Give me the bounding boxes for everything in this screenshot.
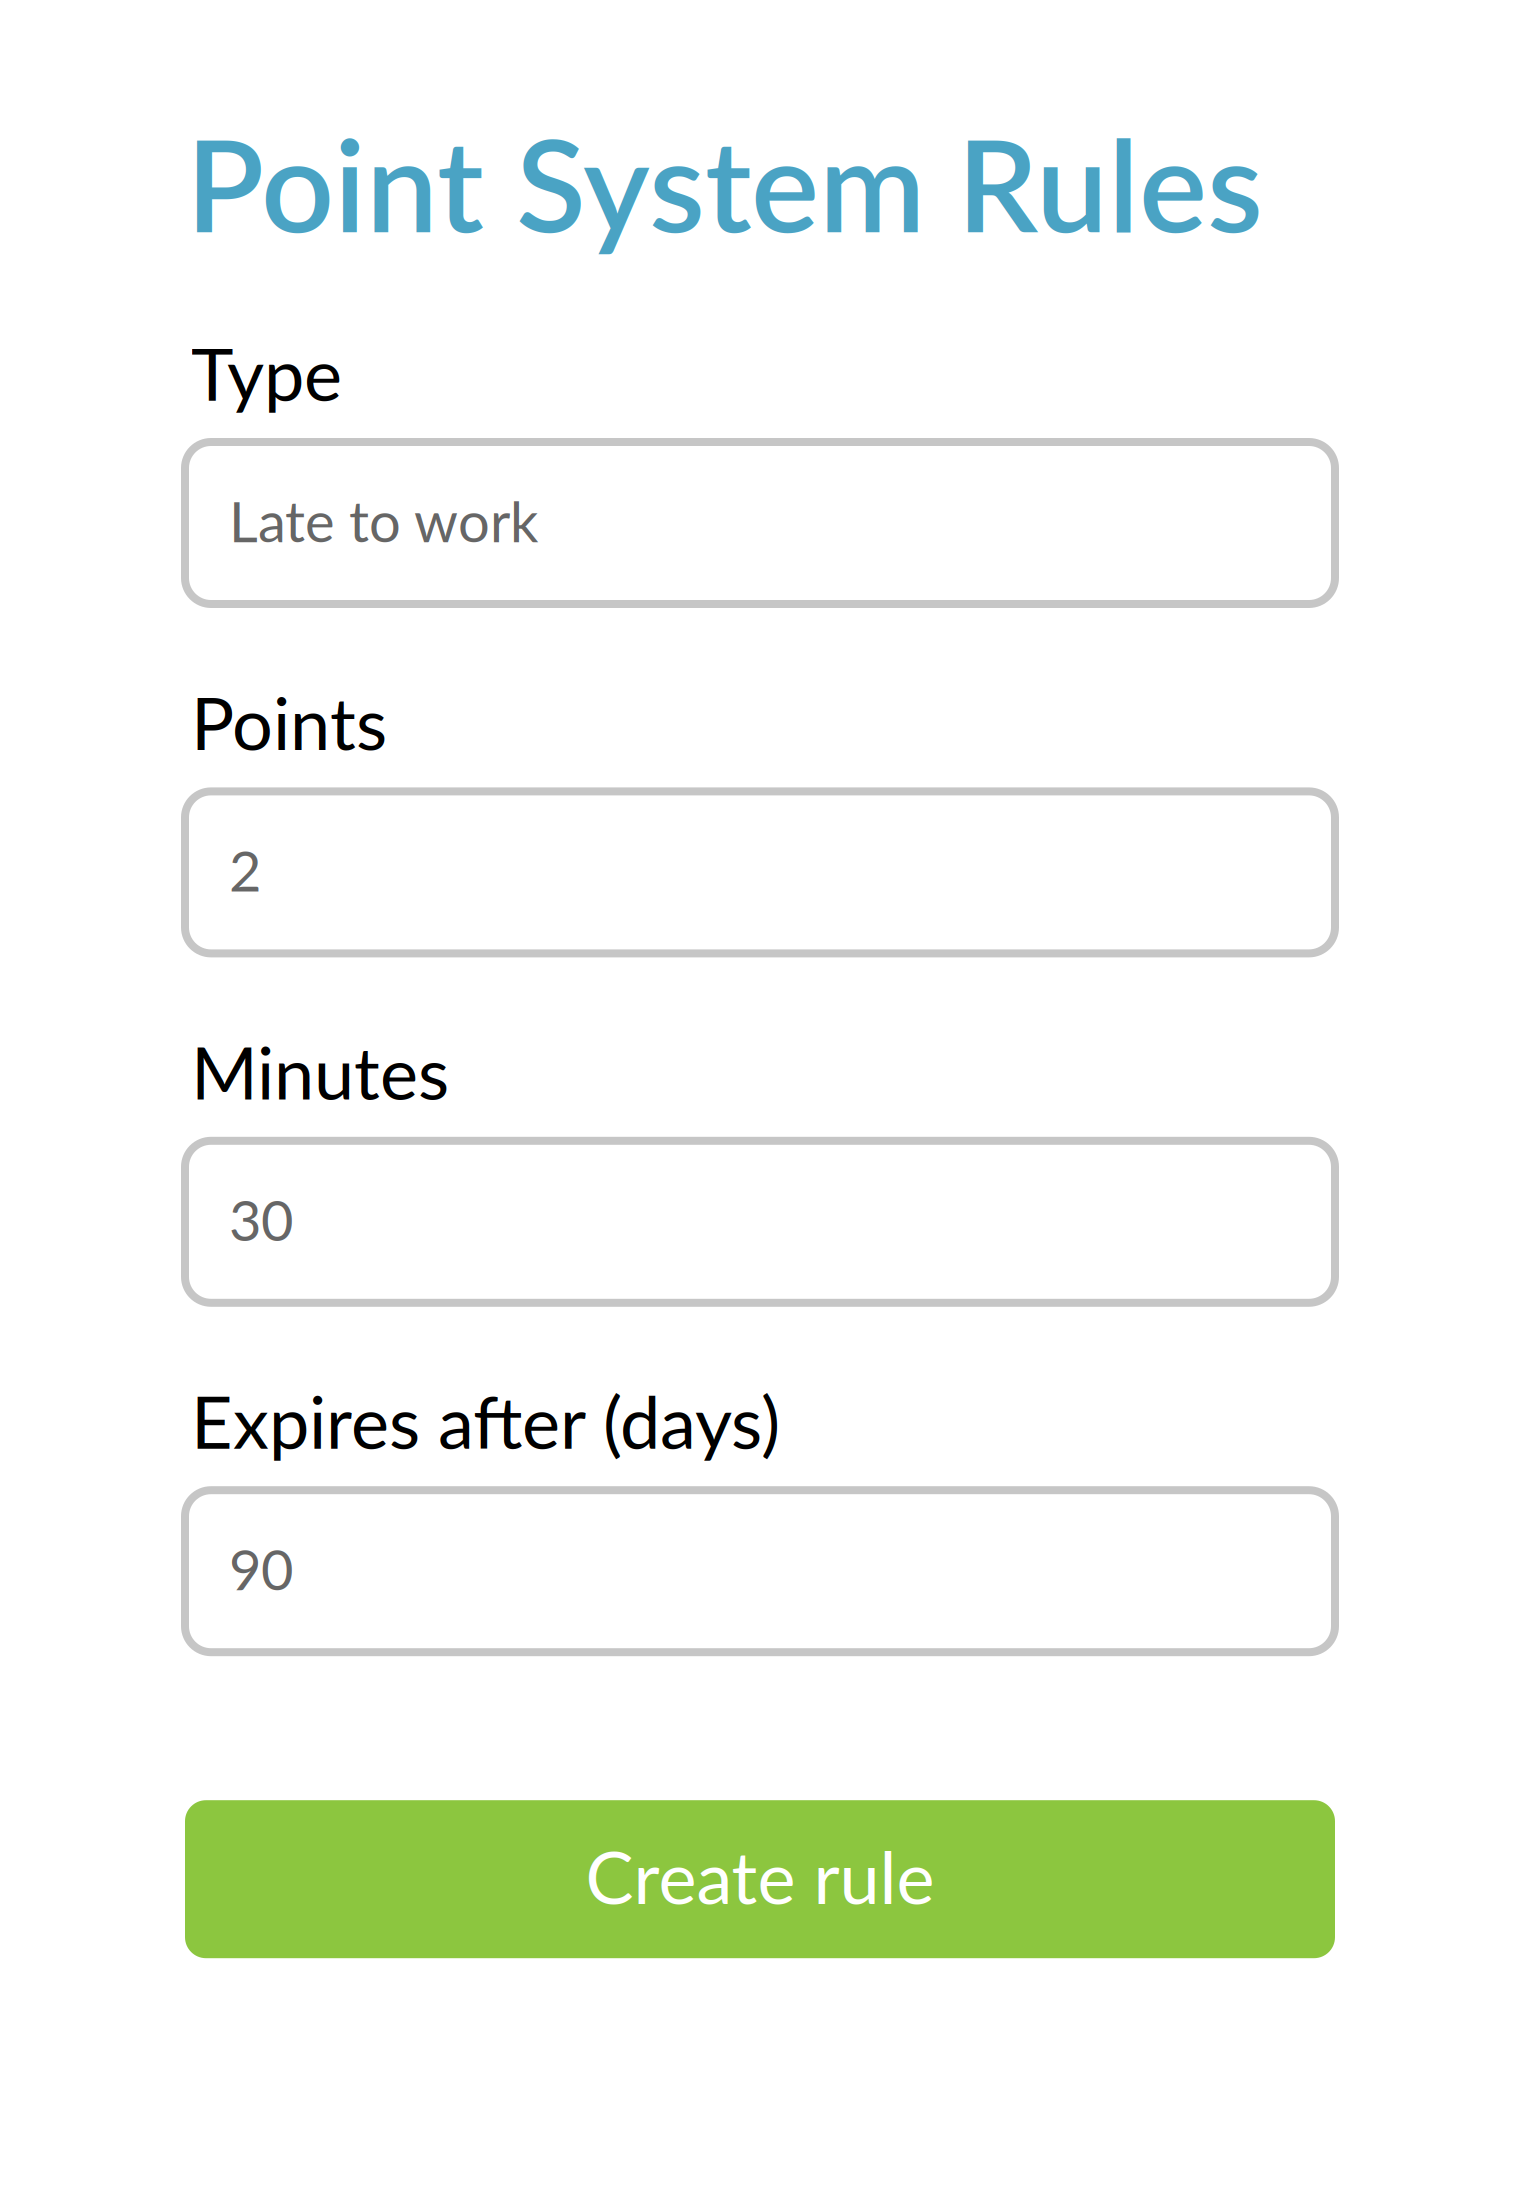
button[interactable]: 30 <box>181 1137 1339 1307</box>
staticText: Point System Rules <box>186 106 1263 260</box>
staticText: Expires after (days) <box>191 1378 780 1464</box>
staticText: Minutes <box>191 1028 449 1115</box>
button[interactable]: 90 <box>181 1486 1339 1656</box>
staticText: Type <box>191 330 342 416</box>
button[interactable]: Create rule <box>185 1800 1335 1958</box>
button[interactable]: 2 <box>181 787 1339 957</box>
button[interactable]: Late to work <box>181 438 1339 608</box>
staticText: Points <box>191 679 387 765</box>
staticText: Late to work <box>229 487 538 554</box>
staticText: 30 <box>229 1186 293 1253</box>
staticText: 2 <box>229 836 261 903</box>
staticText: 90 <box>229 1535 293 1602</box>
staticText: Create rule <box>585 1833 934 1919</box>
